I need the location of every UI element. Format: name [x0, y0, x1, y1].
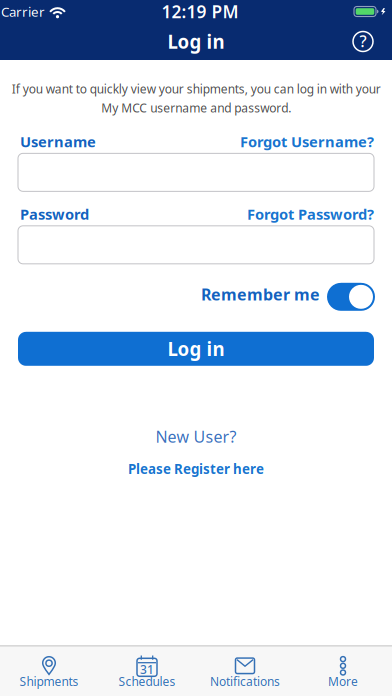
button[interactable]: More: [294, 655, 392, 692]
staticText: 31: [140, 661, 154, 677]
staticText: Schedules: [118, 673, 175, 689]
staticText: If you want to quickly view your shipmen…: [11, 81, 380, 116]
button[interactable]: Forgot Username?: [240, 132, 374, 151]
staticText: Password: [20, 204, 89, 224]
button[interactable]: Shipments: [0, 655, 98, 692]
button[interactable]: Please Register here: [128, 447, 264, 478]
button[interactable]: Forgot Password?: [247, 204, 374, 224]
staticText: ?: [359, 30, 366, 52]
staticText: Log in: [167, 336, 224, 361]
staticText: Log in: [167, 29, 224, 54]
staticText: Forgot Password?: [247, 204, 374, 224]
button[interactable]: Notifications: [196, 655, 294, 692]
button[interactable]: Help: [353, 31, 392, 51]
button[interactable]: Remember me: [327, 283, 375, 311]
staticText: More: [328, 673, 358, 689]
staticText: Forgot Username?: [240, 132, 374, 151]
staticText: 12:19 PM: [161, 0, 238, 23]
staticText: Notifications: [210, 673, 280, 689]
staticText: Username: [20, 132, 96, 151]
staticText: Carrier: [1, 3, 45, 20]
button[interactable]: 31: [98, 655, 196, 692]
staticText: Please Register here: [128, 460, 264, 478]
staticText: Shipments: [19, 673, 78, 689]
staticText: Remember me: [201, 284, 320, 305]
staticText: New User?: [155, 426, 236, 447]
button[interactable]: Log in: [18, 332, 374, 366]
